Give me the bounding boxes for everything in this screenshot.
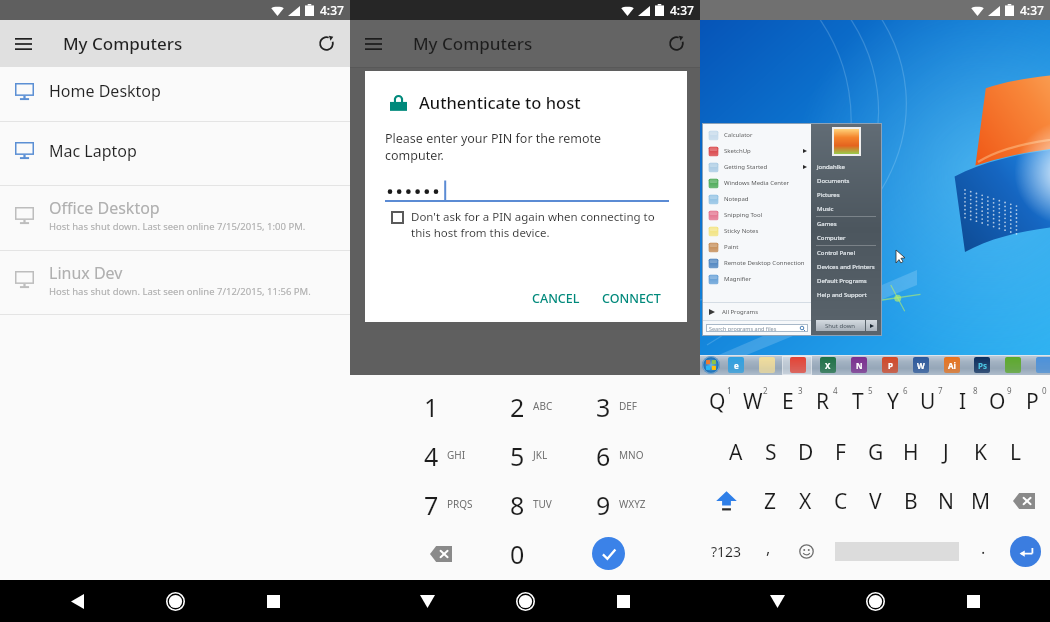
button[interactable]: App xyxy=(1003,355,1023,375)
button[interactable]: A xyxy=(718,427,753,477)
button[interactable]: G xyxy=(858,427,893,477)
button[interactable]: H xyxy=(893,427,928,477)
button[interactable]: 3 xyxy=(552,382,638,431)
button[interactable]: D xyxy=(788,427,823,477)
button[interactable]: Recent apps xyxy=(252,580,294,622)
button[interactable]: U xyxy=(910,376,945,426)
button[interactable]: Delete xyxy=(380,529,466,578)
button[interactable]: Delete xyxy=(998,476,1050,526)
button[interactable]: Refresh xyxy=(303,20,350,67)
button[interactable]: Shut down xyxy=(816,320,865,331)
button[interactable]: CONNECT xyxy=(594,283,669,314)
button[interactable]: Home xyxy=(154,580,196,622)
button[interactable]: 6 xyxy=(552,431,638,480)
button[interactable]: 5 xyxy=(466,431,552,480)
button[interactable]: Office Desktop xyxy=(0,186,350,251)
button[interactable]: Linux Dev xyxy=(0,251,350,315)
button[interactable]: F xyxy=(823,427,858,477)
button[interactable]: Recent apps xyxy=(602,580,644,622)
button[interactable]: Q xyxy=(700,376,735,426)
button[interactable]: Magnifier xyxy=(703,271,811,287)
button[interactable]: Refresh xyxy=(653,20,700,67)
button[interactable]: Enter xyxy=(1000,525,1050,577)
button[interactable]: Sticky Notes xyxy=(703,223,811,239)
button[interactable]: Computer xyxy=(811,231,881,245)
button[interactable]: Start xyxy=(701,355,721,375)
button[interactable]: App xyxy=(849,355,869,375)
button[interactable]: Home Desktop xyxy=(0,67,350,122)
button[interactable]: App xyxy=(1034,355,1050,375)
button[interactable]: Paint xyxy=(703,239,811,255)
button[interactable]: Z xyxy=(753,476,788,526)
button[interactable]: Devices and Printers xyxy=(811,260,881,274)
button[interactable]: Open navigation menu xyxy=(0,20,47,67)
button[interactable]: 4 xyxy=(380,431,466,480)
button[interactable]: App xyxy=(788,355,808,375)
button[interactable]: Shift xyxy=(700,476,752,526)
button[interactable]: O xyxy=(980,376,1015,426)
button[interactable]: X xyxy=(788,476,823,526)
button[interactable]: Documents xyxy=(811,174,881,188)
button[interactable]: Home xyxy=(504,580,546,622)
button[interactable]: App xyxy=(972,355,992,375)
button[interactable]: W xyxy=(735,376,770,426)
button[interactable]: J xyxy=(928,427,963,477)
button[interactable]: Windows Media Center xyxy=(703,175,811,191)
button[interactable]: Control Panel xyxy=(811,246,881,260)
button[interactable]: Hide keyboard xyxy=(406,580,448,622)
button[interactable]: Space xyxy=(828,525,966,577)
button[interactable]: 9 xyxy=(552,480,638,529)
button[interactable]: App xyxy=(818,355,838,375)
button[interactable]: B xyxy=(893,476,928,526)
button[interactable]: jondahlke xyxy=(811,160,881,174)
button[interactable]: 8 xyxy=(466,480,552,529)
button[interactable]: Mac Laptop xyxy=(0,122,350,186)
button[interactable]: Games xyxy=(811,217,881,231)
button[interactable]: E xyxy=(770,376,805,426)
button[interactable]: S xyxy=(753,427,788,477)
button[interactable]: P xyxy=(1015,376,1050,426)
button[interactable]: . xyxy=(968,525,998,577)
button[interactable]: Notepad xyxy=(703,191,811,207)
button[interactable]: M xyxy=(963,476,998,526)
button[interactable]: App xyxy=(726,355,746,375)
button[interactable]: Open navigation menu xyxy=(350,20,397,67)
button[interactable]: Default Programs xyxy=(811,274,881,288)
button[interactable]: K xyxy=(963,427,998,477)
button[interactable]: , xyxy=(752,525,784,577)
button[interactable]: Help and Support xyxy=(811,288,881,302)
button[interactable]: App xyxy=(880,355,900,375)
button[interactable]: Remote Desktop Connection xyxy=(703,255,811,271)
button[interactable]: L xyxy=(998,427,1033,477)
button[interactable]: SketchUp xyxy=(703,143,811,159)
button[interactable]: Snipping Tool xyxy=(703,207,811,223)
button[interactable]: App xyxy=(911,355,931,375)
button[interactable]: Shut down options xyxy=(866,320,877,331)
button[interactable]: App xyxy=(942,355,962,375)
button[interactable]: 2 xyxy=(466,382,552,431)
button[interactable]: Recent apps xyxy=(952,580,994,622)
button[interactable]: Home xyxy=(854,580,896,622)
button[interactable]: V xyxy=(858,476,893,526)
button[interactable]: Music xyxy=(811,202,881,216)
button[interactable]: T xyxy=(840,376,875,426)
button[interactable]: N xyxy=(928,476,963,526)
button[interactable]: Emoji xyxy=(788,525,824,577)
button[interactable]: Calculator xyxy=(703,127,811,143)
button[interactable]: 0 xyxy=(466,529,552,578)
button[interactable]: 7 xyxy=(380,480,466,529)
button[interactable]: 1 xyxy=(380,382,466,431)
button[interactable]: Don't ask for a PIN again when connectin… xyxy=(385,209,669,240)
button[interactable]: C xyxy=(823,476,858,526)
button[interactable]: Hide keyboard xyxy=(756,580,798,622)
button[interactable]: Getting Started xyxy=(703,159,811,175)
button[interactable]: Y xyxy=(875,376,910,426)
button[interactable]: Done xyxy=(552,529,638,578)
button[interactable]: Back xyxy=(56,580,98,622)
button[interactable]: Pictures xyxy=(811,188,881,202)
button[interactable]: R xyxy=(805,376,840,426)
button[interactable]: CANCEL xyxy=(524,283,588,314)
button[interactable]: ?123 xyxy=(700,525,752,577)
button[interactable]: I xyxy=(945,376,980,426)
button[interactable]: App xyxy=(757,355,777,375)
